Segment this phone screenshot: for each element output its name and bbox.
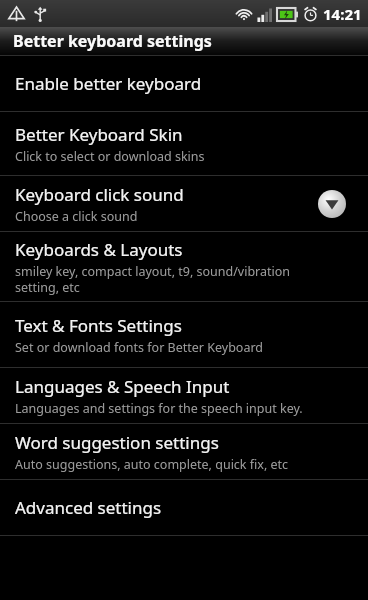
staticText: 14:21 [323,4,362,24]
button[interactable]: Advanced settings [0,480,368,535]
staticText: Set or download fonts for Better Keyboar… [15,339,263,356]
button[interactable]: Choose a click sound [318,190,346,218]
button[interactable]: Enable better keyboard [0,56,368,111]
staticText: Better Keyboard Skin [15,123,183,146]
staticText: Word suggestion settings [15,431,219,454]
staticText: Auto suggestions, auto complete, quick f… [15,456,289,473]
staticText: Keyboards & Layouts [15,238,183,261]
button[interactable]: Keyboard click sound [0,176,368,231]
staticText: Languages and settings for the speech in… [15,400,303,417]
staticText: Text & Fonts Settings [15,314,182,337]
button[interactable]: Keyboards & Layouts [0,232,368,301]
staticText: Better keyboard settings [13,30,212,52]
staticText: Languages & Speech Input [15,375,230,398]
button[interactable]: Word suggestion settings [0,424,368,479]
staticText: Choose a click sound [15,208,138,225]
button[interactable]: Text & Fonts Settings [0,302,368,367]
button[interactable]: Languages & Speech Input [0,368,368,423]
staticText: Keyboard click sound [15,183,184,206]
staticText: Enable better keyboard [15,72,202,95]
staticText: Advanced settings [15,496,162,519]
button[interactable]: Better Keyboard Skin [0,112,368,175]
staticText: smiley key, compact layout, t9, sound/vi… [15,263,291,295]
staticText: Click to select or download skins [15,148,205,165]
